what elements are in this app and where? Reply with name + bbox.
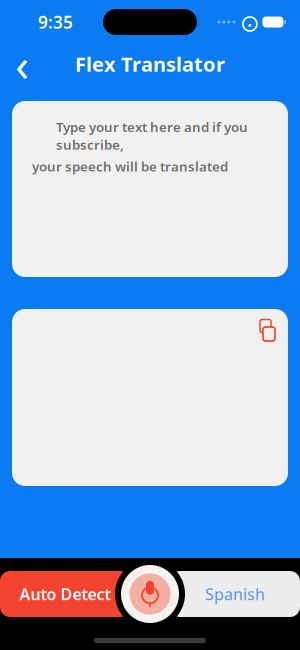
button[interactable]: Copy translation xyxy=(252,315,282,345)
staticText: Flex Translator xyxy=(75,51,225,77)
staticText: Spanish xyxy=(205,583,265,605)
button[interactable]: Auto Detect xyxy=(0,571,130,617)
button[interactable]: Record speech xyxy=(121,565,179,623)
button[interactable]: Spanish xyxy=(170,571,300,617)
staticText: your speech will be translated xyxy=(32,157,228,175)
staticText: Auto Detect xyxy=(19,583,110,605)
staticText: ‹ xyxy=(15,34,29,94)
staticText: 9:35 xyxy=(38,10,73,33)
button[interactable]: Back xyxy=(4,46,40,82)
staticText: Type your text here and if you subscribe… xyxy=(56,118,248,153)
